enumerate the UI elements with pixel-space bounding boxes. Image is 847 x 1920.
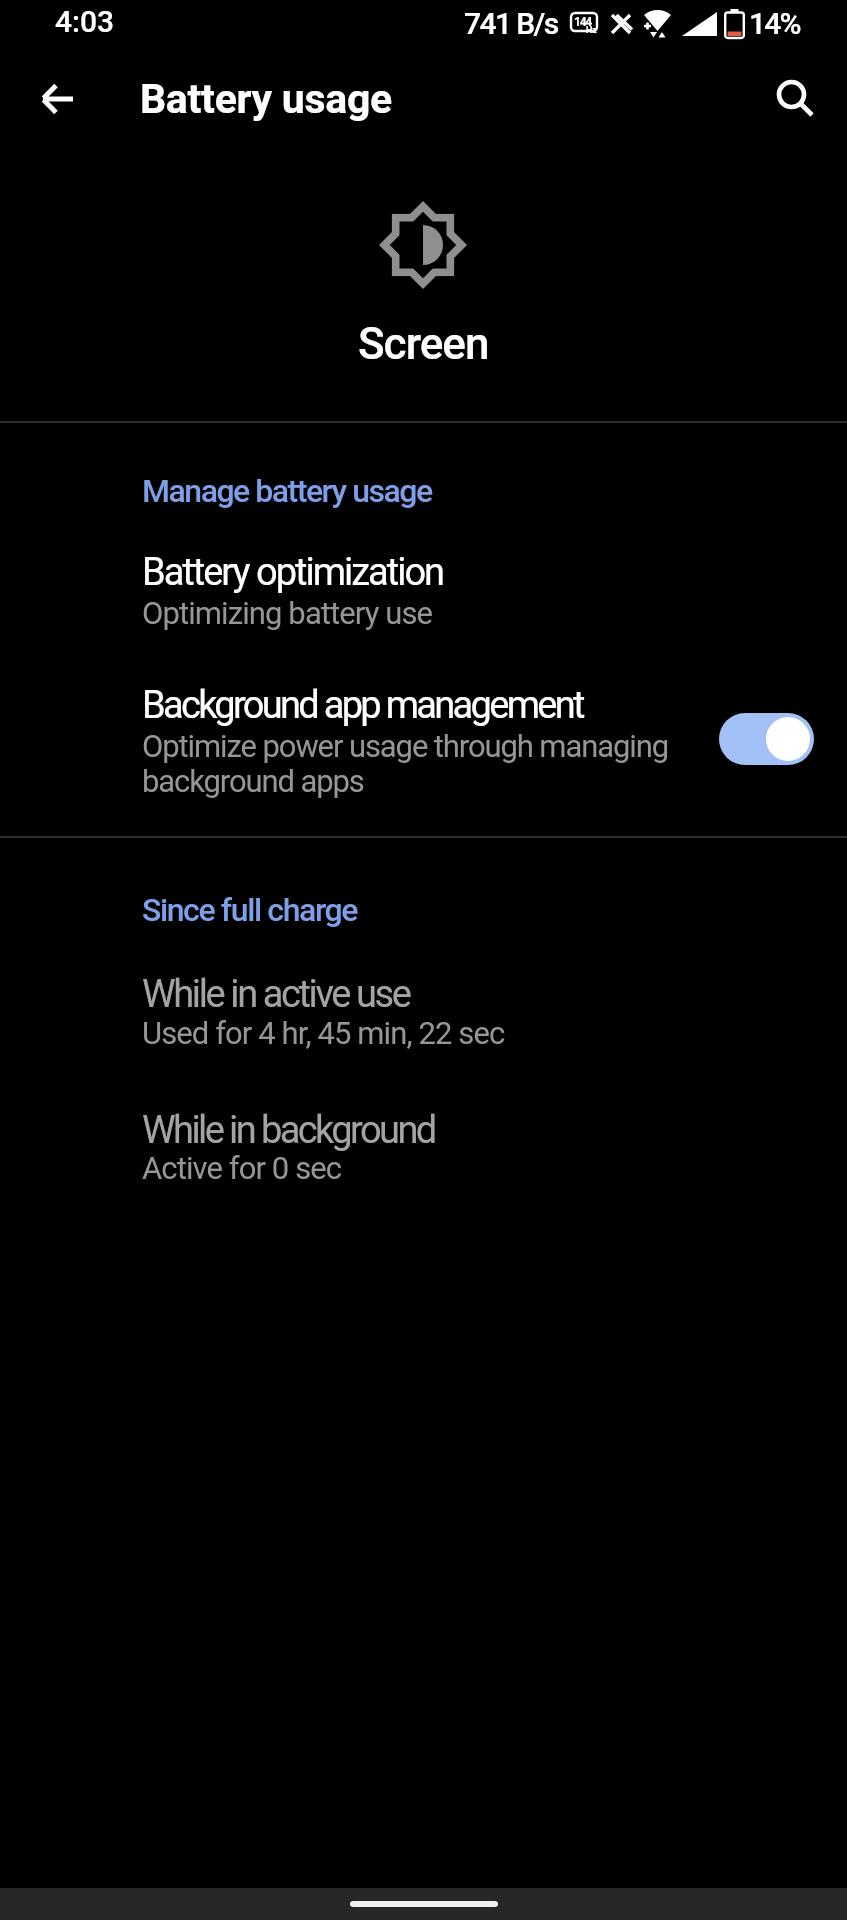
staticText: 14%	[749, 6, 800, 41]
staticText: Battery optimization	[142, 550, 444, 595]
staticText: Battery usage	[140, 75, 392, 123]
staticText: 4:03	[55, 4, 115, 39]
staticText: Screen	[358, 318, 489, 370]
button[interactable]	[719, 713, 814, 765]
staticText: Manage battery usage	[142, 472, 432, 510]
staticText: Hz	[586, 25, 597, 36]
staticText: 741 B/s	[464, 6, 558, 41]
button[interactable]	[766, 69, 826, 129]
staticText: Optimize power usage through managing ba…	[142, 728, 669, 799]
staticText: While in background	[142, 1108, 435, 1153]
staticText: While in active use	[142, 972, 410, 1017]
staticText: Optimizing battery use	[142, 595, 433, 631]
staticText: Active for 0 sec	[142, 1150, 342, 1186]
staticText: Used for 4 hr, 45 min, 22 sec	[142, 1015, 505, 1051]
button[interactable]	[28, 69, 88, 129]
staticText: Since full charge	[142, 891, 358, 929]
button[interactable]: Battery optimization	[0, 540, 847, 650]
staticText: Background app management	[142, 683, 583, 728]
button[interactable]: Background app management	[0, 670, 847, 810]
staticText: 144	[574, 15, 592, 29]
